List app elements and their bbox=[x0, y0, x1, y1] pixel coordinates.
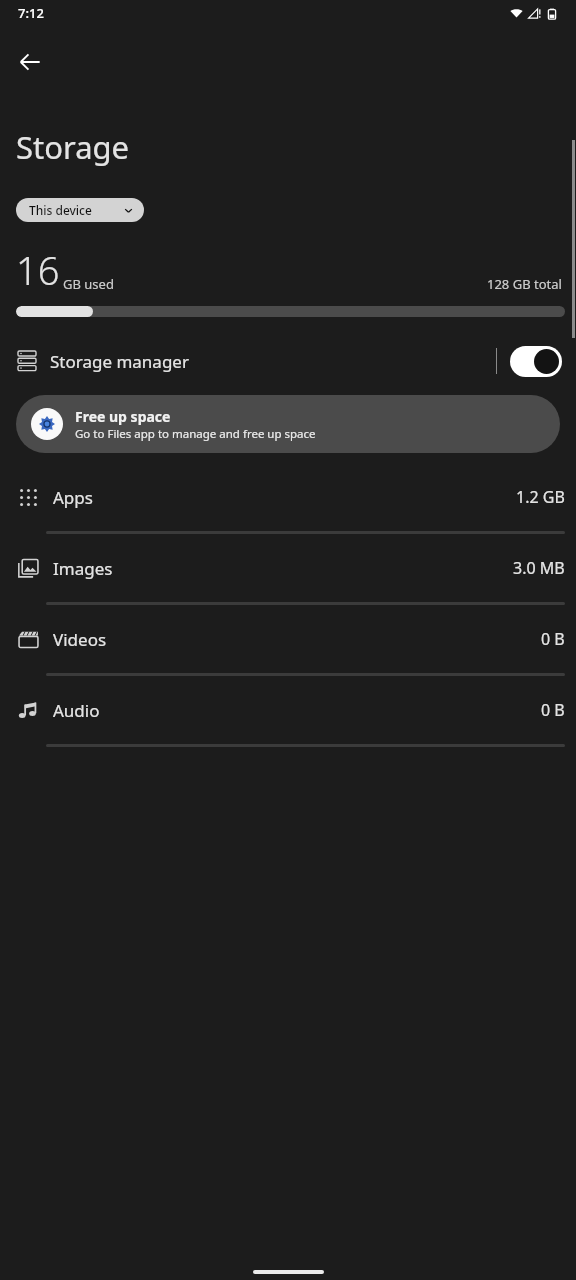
staticText: Storage manager bbox=[50, 350, 496, 373]
staticText: Free up space bbox=[75, 407, 171, 426]
staticText: Videos bbox=[53, 628, 541, 651]
button[interactable]: Audio bbox=[0, 676, 576, 744]
button[interactable]: Back bbox=[6, 38, 54, 86]
button[interactable]: Storage manager bbox=[0, 333, 576, 389]
staticText: GB used bbox=[63, 275, 114, 293]
button[interactable]: Storage manager toggle bbox=[510, 346, 562, 377]
staticText: 7:12 bbox=[18, 4, 44, 22]
staticText: Apps bbox=[53, 486, 516, 509]
staticText: 16 bbox=[16, 244, 60, 296]
staticText: 0 B bbox=[541, 699, 565, 721]
button[interactable]: Apps bbox=[0, 463, 576, 531]
button[interactable]: Videos bbox=[0, 605, 576, 673]
staticText: 1.2 GB bbox=[516, 486, 565, 508]
staticText: This device bbox=[29, 202, 124, 218]
button[interactable]: Images bbox=[0, 534, 576, 602]
button[interactable]: This device bbox=[16, 198, 144, 222]
staticText: Go to Files app to manage and free up sp… bbox=[75, 426, 316, 442]
staticText: 3.0 MB bbox=[513, 557, 565, 579]
staticText: Storage bbox=[16, 126, 130, 168]
staticText: 0 B bbox=[541, 628, 565, 650]
staticText: 128 GB total bbox=[487, 275, 562, 293]
staticText: Audio bbox=[53, 699, 541, 722]
staticText: Images bbox=[53, 557, 513, 580]
button[interactable]: Free up space bbox=[16, 395, 560, 453]
